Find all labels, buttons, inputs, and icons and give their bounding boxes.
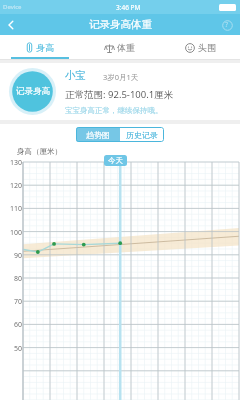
staticText: 90: [5, 251, 22, 261]
staticText: 120: [5, 181, 22, 191]
button[interactable]: Back: [0, 14, 22, 35]
staticText: 3岁0月1天: [103, 72, 139, 82]
staticText: 今天: [108, 156, 123, 165]
button[interactable]: 头围: [160, 35, 240, 59]
staticText: 80: [5, 274, 22, 284]
button[interactable]: Help: [217, 15, 237, 35]
staticText: 记录身高体重: [89, 18, 152, 31]
staticText: 身高: [36, 42, 54, 53]
staticText: 正常范围: 92.5-100.1厘米: [65, 88, 174, 101]
button[interactable]: 记录身高: [9, 68, 56, 115]
button[interactable]: 体重: [80, 35, 160, 59]
button[interactable]: 趋势图: [76, 127, 120, 142]
button[interactable]: 历史记录: [120, 127, 164, 142]
staticText: 趋势图: [86, 130, 110, 140]
staticText: 小宝: [65, 69, 86, 82]
staticText: 130: [5, 158, 22, 168]
staticText: 110: [5, 204, 22, 214]
staticText: 身高（厘米）: [17, 147, 62, 156]
staticText: 记录身高: [14, 86, 52, 97]
staticText: 宝宝身高正常，继续保持哦。: [65, 106, 163, 115]
staticText: ?: [225, 20, 229, 30]
button[interactable]: 身高: [0, 35, 80, 59]
staticText: 头围: [198, 42, 216, 53]
staticText: 100: [5, 228, 22, 238]
staticText: 70: [5, 297, 22, 307]
staticText: 60: [5, 320, 22, 330]
staticText: 历史记录: [126, 130, 158, 140]
staticText: 50: [5, 344, 22, 354]
staticText: Device: [3, 3, 22, 11]
staticText: 3:46 PM: [116, 3, 141, 12]
staticText: 体重: [117, 42, 135, 53]
